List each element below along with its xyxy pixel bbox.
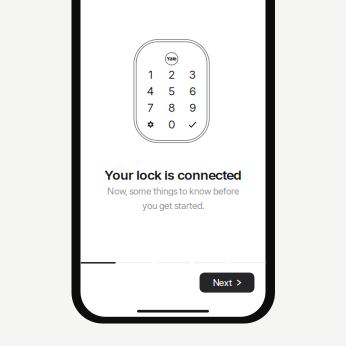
staticText: Your lock is connected [104,167,241,183]
staticText: 8 [169,101,175,115]
staticText: 7 [148,101,154,115]
button[interactable]: Next [200,273,254,293]
staticText: 9 [190,101,196,115]
staticText: Next [213,277,232,288]
staticText: 5 [169,84,175,98]
staticText: 1 [149,68,153,82]
staticText: Yale [167,56,177,62]
staticText: 4 [147,84,154,98]
staticText: 0 [169,118,175,131]
staticText: 2 [169,68,175,82]
staticText: 3 [189,68,196,82]
staticText: Now, some things to know before you get … [107,185,239,211]
staticText: 6 [190,84,196,98]
